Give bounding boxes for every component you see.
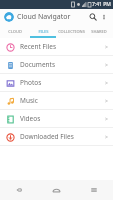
button[interactable]: Photos: [0, 74, 113, 91]
staticText: Music: [20, 96, 38, 105]
button[interactable]: Cloud Navigator app icon: [4, 12, 14, 22]
button[interactable]: Home: [37, 180, 75, 200]
button[interactable]: FILES: [29, 25, 57, 38]
staticText: Recent Files: [20, 42, 57, 51]
button[interactable]: More options: [99, 12, 109, 22]
button[interactable]: Recent apps: [75, 180, 113, 200]
button[interactable]: Downloaded Files: [0, 128, 113, 145]
staticText: Downloaded Files: [20, 132, 74, 141]
staticText: Photos: [20, 78, 42, 87]
staticText: Documents: [20, 60, 56, 69]
button[interactable]: Search: [87, 11, 99, 23]
staticText: Videos: [20, 114, 41, 123]
button[interactable]: Recent Files: [0, 38, 113, 55]
button[interactable]: CLOUD: [0, 25, 29, 38]
staticText: FILES: [38, 29, 49, 34]
staticText: Cloud Navigator: [17, 12, 71, 22]
button[interactable]: Videos: [0, 110, 113, 127]
button[interactable]: Documents: [0, 56, 113, 73]
staticText: CLOUD: [8, 29, 22, 34]
button[interactable]: Music: [0, 92, 113, 109]
button[interactable]: Back: [0, 180, 37, 200]
staticText: COLLECTIONS: [58, 29, 85, 34]
button[interactable]: SHARED: [85, 25, 113, 38]
staticText: 7:41 PM: [92, 1, 111, 8]
button[interactable]: COLLECTIONS: [57, 25, 85, 38]
staticText: SHARED: [91, 29, 107, 34]
